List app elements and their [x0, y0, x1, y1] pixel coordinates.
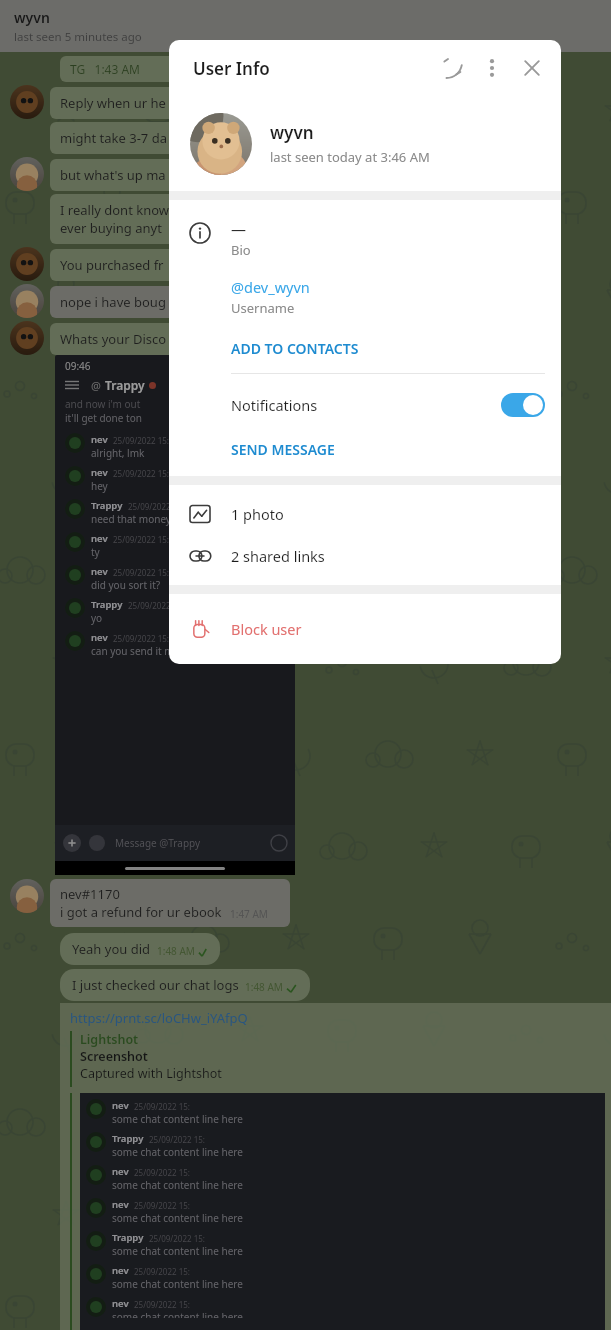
staticText: nev: [112, 1297, 129, 1310]
staticText: wyvn: [14, 8, 50, 27]
staticText: User Info: [193, 57, 270, 80]
staticText: nev: [91, 565, 108, 578]
staticText: Whats your Disco: [60, 330, 167, 348]
staticText: nev: [91, 631, 108, 644]
staticText: Bio: [231, 241, 251, 259]
staticText: 25/09/2022 15:: [113, 468, 169, 479]
staticText: —: [231, 219, 247, 239]
button[interactable]: —: [231, 219, 545, 259]
staticText: Message @Trappy: [115, 836, 201, 850]
staticText: Lightshot: [80, 1031, 139, 1048]
button[interactable]: 1 photo: [169, 493, 561, 535]
button[interactable]: ADD TO CONTACTS: [231, 335, 545, 361]
staticText: 1:47 AM: [230, 907, 268, 921]
staticText: 1:48 AM: [245, 980, 283, 994]
staticText: 1:48 AM: [157, 944, 195, 958]
staticText: nev: [91, 466, 108, 479]
staticText: nev: [112, 1099, 129, 1112]
staticText: 09:46: [65, 359, 91, 373]
staticText: last seen 5 minutes ago: [14, 29, 142, 45]
staticText: nope i have boug: [60, 293, 166, 311]
staticText: 25/09/2022 15:: [134, 1167, 190, 1178]
button[interactable]: SEND MESSAGE: [231, 436, 545, 462]
staticText: 25/09/2022 15:: [134, 1101, 190, 1112]
staticText: 25/09/2022 15:: [113, 567, 169, 578]
staticText: Trappy: [112, 1132, 144, 1145]
staticText: Screenshot: [80, 1048, 148, 1065]
staticText: 25/09/2022 15:: [128, 600, 184, 611]
staticText: some chat content line here: [112, 1178, 243, 1192]
staticText: I really dont know ever buying anyt: [60, 201, 170, 237]
staticText: Username: [231, 299, 295, 317]
staticText: 1 photo: [231, 504, 284, 524]
staticText: Trappy: [112, 1231, 144, 1244]
staticText: 25/09/2022 15:: [134, 1200, 190, 1211]
staticText: some chat content line here: [112, 1211, 243, 1225]
staticText: You purchased fr: [60, 256, 164, 274]
staticText: I just checked our chat logs: [72, 976, 239, 994]
staticText: SEND MESSAGE: [231, 440, 335, 459]
staticText: 25/09/2022 15:: [113, 633, 169, 644]
staticText: might take 3-7 da: [60, 129, 167, 147]
staticText: can you send it man i need that money: [91, 644, 274, 658]
staticText: 25/09/2022 15:: [149, 1134, 205, 1145]
button[interactable]: wyvn: [169, 96, 561, 191]
staticText: Reply when ur he: [60, 94, 166, 112]
staticText: but what's up ma: [60, 166, 166, 184]
staticText: Trappy: [91, 499, 123, 512]
staticText: ADD TO CONTACTS: [231, 339, 359, 358]
staticText: Trappy: [91, 598, 123, 611]
button[interactable]: Call: [437, 53, 467, 83]
button[interactable]: 2 shared links: [169, 535, 561, 577]
staticText: @: [91, 378, 101, 393]
button[interactable]: Notifications toggle: [501, 393, 545, 417]
staticText: 25/09/2022 15:: [113, 534, 169, 545]
staticText: 25/09/2022 15:: [149, 1233, 205, 1244]
staticText: TG 1:43 AM: [70, 61, 141, 77]
staticText: nev#1170: [60, 885, 120, 903]
staticText: Captured with Lightshot: [80, 1065, 222, 1082]
staticText: 25/09/2022 15:: [128, 501, 184, 512]
staticText: Yeah you did: [72, 940, 151, 958]
button[interactable]: @dev_wyvn: [231, 277, 545, 317]
staticText: 2 shared links: [231, 546, 325, 566]
staticText: last seen today at 3:46 AM: [270, 148, 430, 166]
staticText: Block user: [231, 619, 302, 639]
staticText: nev: [112, 1198, 129, 1211]
staticText: ty: [91, 545, 100, 559]
staticText: 25/09/2022 15:: [134, 1266, 190, 1277]
button[interactable]: Close: [517, 53, 547, 83]
staticText: https://prnt.sc/loCHw_iYAfpQ: [70, 1009, 248, 1027]
staticText: some chat content line here: [112, 1145, 243, 1159]
staticText: did you sort it?: [91, 578, 161, 592]
button[interactable]: Notifications: [231, 388, 545, 422]
staticText: some chat content line here: [112, 1310, 243, 1318]
staticText: need that money: [91, 512, 171, 526]
staticText: nev: [91, 532, 108, 545]
staticText: hey: [91, 479, 108, 493]
staticText: i got a refund for ur ebook: [60, 903, 222, 921]
staticText: alright, lmk: [91, 446, 145, 460]
staticText: nev: [91, 433, 108, 446]
button[interactable]: More options: [477, 53, 507, 83]
staticText: 25/09/2022 15:: [113, 435, 169, 446]
staticText: and now i'm out: [65, 397, 141, 411]
staticText: Notifications: [231, 395, 318, 415]
staticText: yo: [91, 611, 103, 625]
staticText: wyvn: [270, 121, 314, 144]
staticText: nev: [112, 1165, 129, 1178]
staticText: some chat content line here: [112, 1112, 243, 1126]
staticText: Trappy: [105, 377, 145, 393]
staticText: some chat content line here: [112, 1277, 243, 1291]
staticText: nev: [112, 1264, 129, 1277]
button[interactable]: Block user: [169, 594, 561, 664]
staticText: it'll get done ton: [65, 411, 142, 425]
staticText: some chat content line here: [112, 1244, 243, 1258]
staticText: 25/09/2022 15:: [134, 1299, 190, 1310]
staticText: @dev_wyvn: [231, 277, 310, 297]
